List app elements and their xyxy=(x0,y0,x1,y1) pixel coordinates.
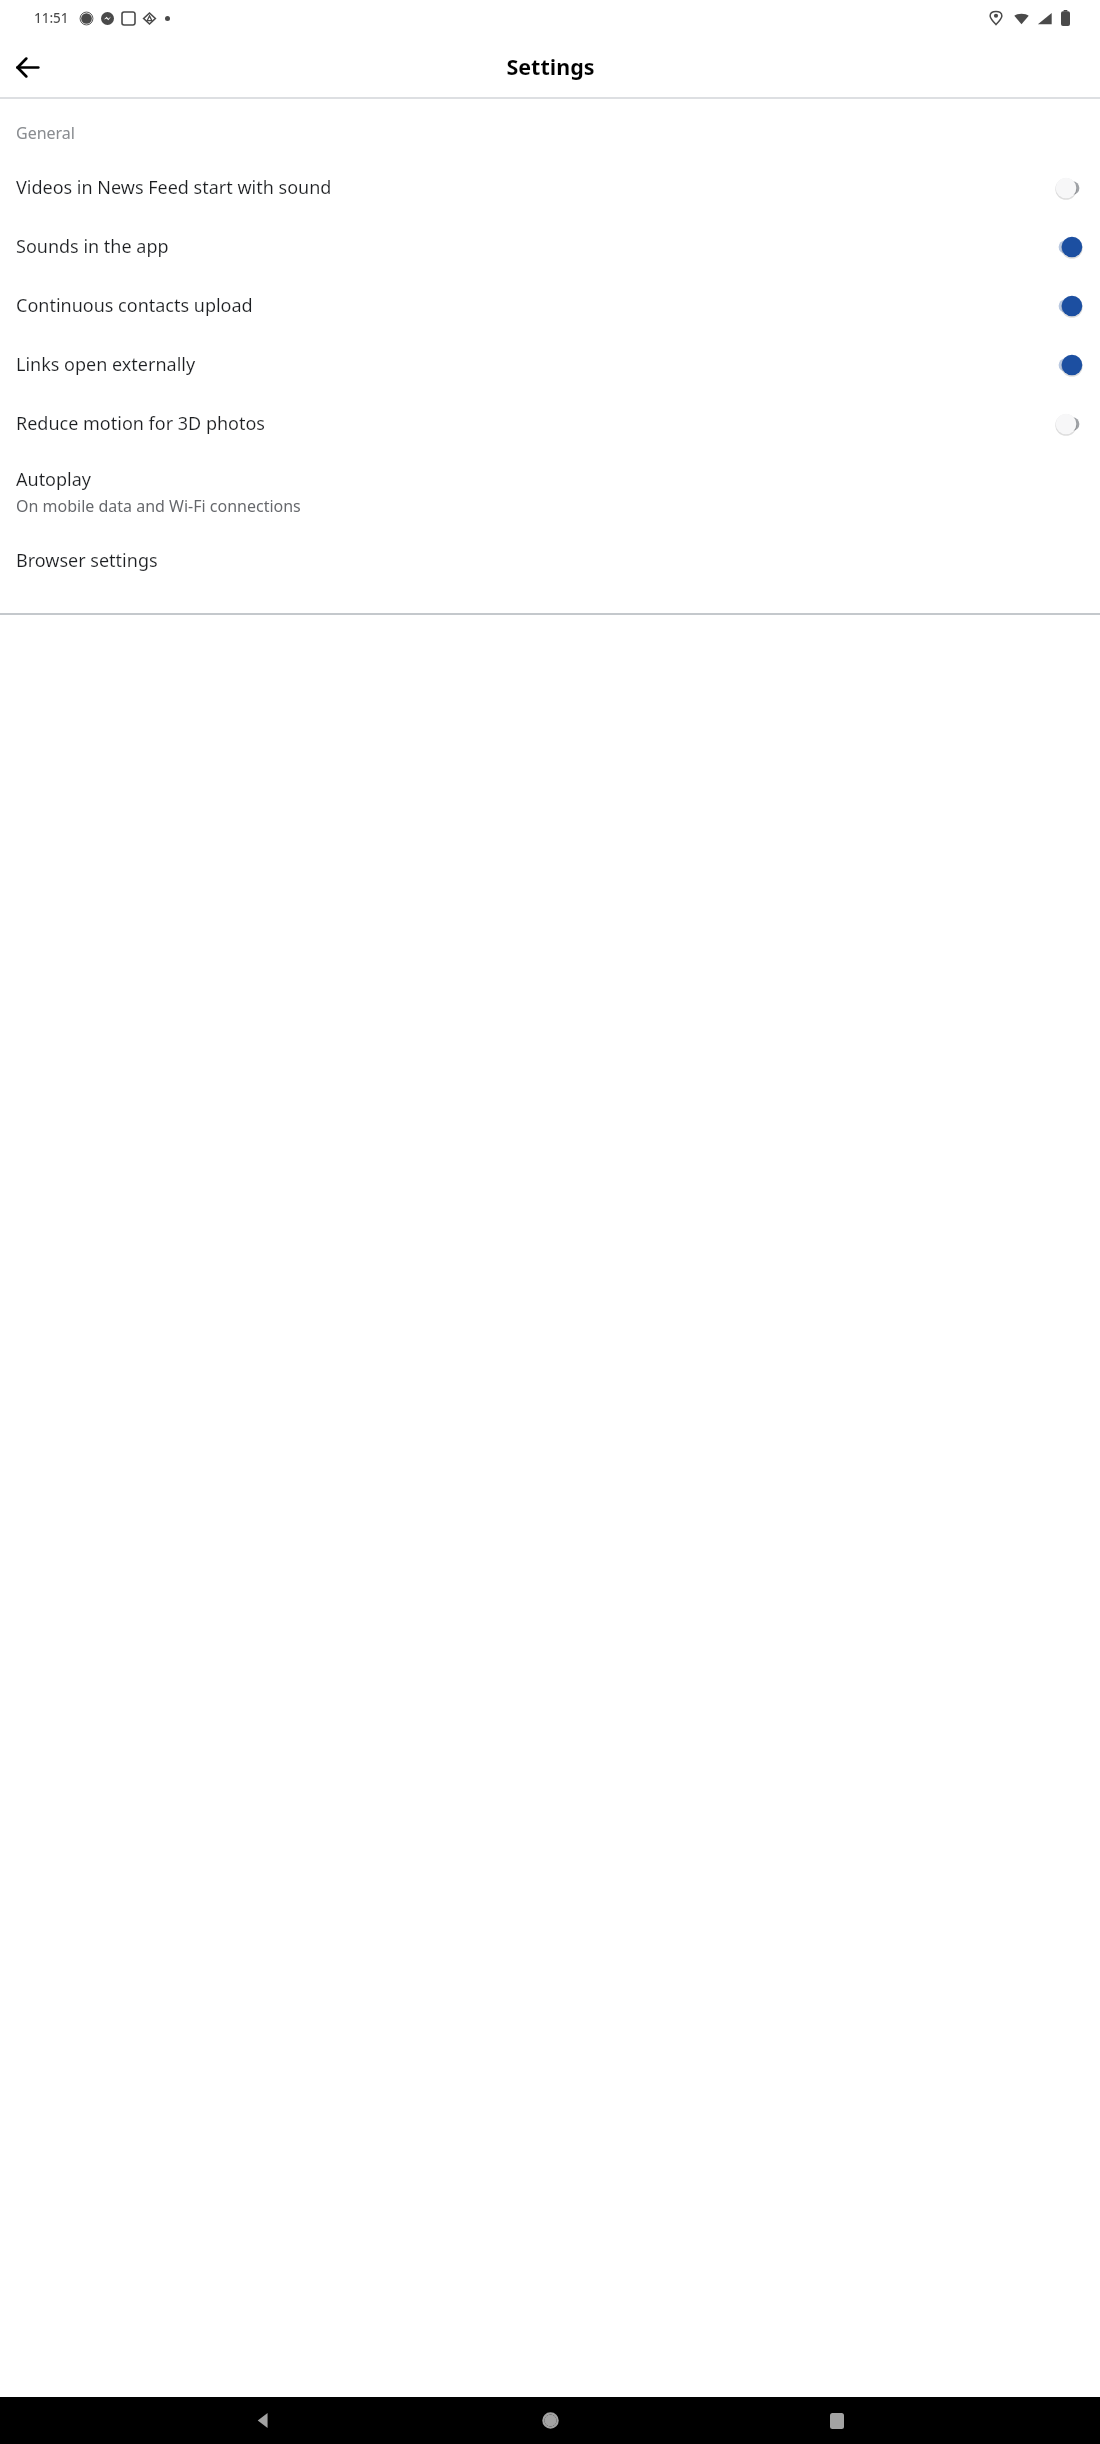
staticText: Settings xyxy=(506,52,595,81)
button[interactable]: Videos in News Feed start with sound xyxy=(0,158,1100,217)
button[interactable]: Sounds in the app xyxy=(0,217,1100,276)
staticText: Sounds in the app xyxy=(16,234,1056,259)
button[interactable]: Back xyxy=(8,48,46,86)
staticText: General xyxy=(16,122,75,144)
staticText: 11:51 xyxy=(34,9,69,27)
button[interactable]: Autoplay xyxy=(0,453,1100,531)
staticText: Links open externally xyxy=(16,352,1056,377)
button[interactable]: Home xyxy=(526,2397,574,2444)
button[interactable]: Reduce motion for 3D photos xyxy=(0,394,1100,453)
button[interactable]: Links open externally xyxy=(0,335,1100,394)
button[interactable]: Recents xyxy=(813,2397,861,2444)
staticText: Continuous contacts upload xyxy=(16,293,1056,318)
button[interactable]: Back xyxy=(239,2397,287,2444)
staticText: Autoplay xyxy=(16,467,92,492)
button[interactable]: Browser settings xyxy=(0,531,1100,590)
staticText: Reduce motion for 3D photos xyxy=(16,411,1056,436)
button[interactable]: Continuous contacts upload xyxy=(0,276,1100,335)
staticText: Browser settings xyxy=(16,548,158,573)
staticText: On mobile data and Wi-Fi connections xyxy=(16,495,301,517)
staticText: Videos in News Feed start with sound xyxy=(16,175,1056,200)
